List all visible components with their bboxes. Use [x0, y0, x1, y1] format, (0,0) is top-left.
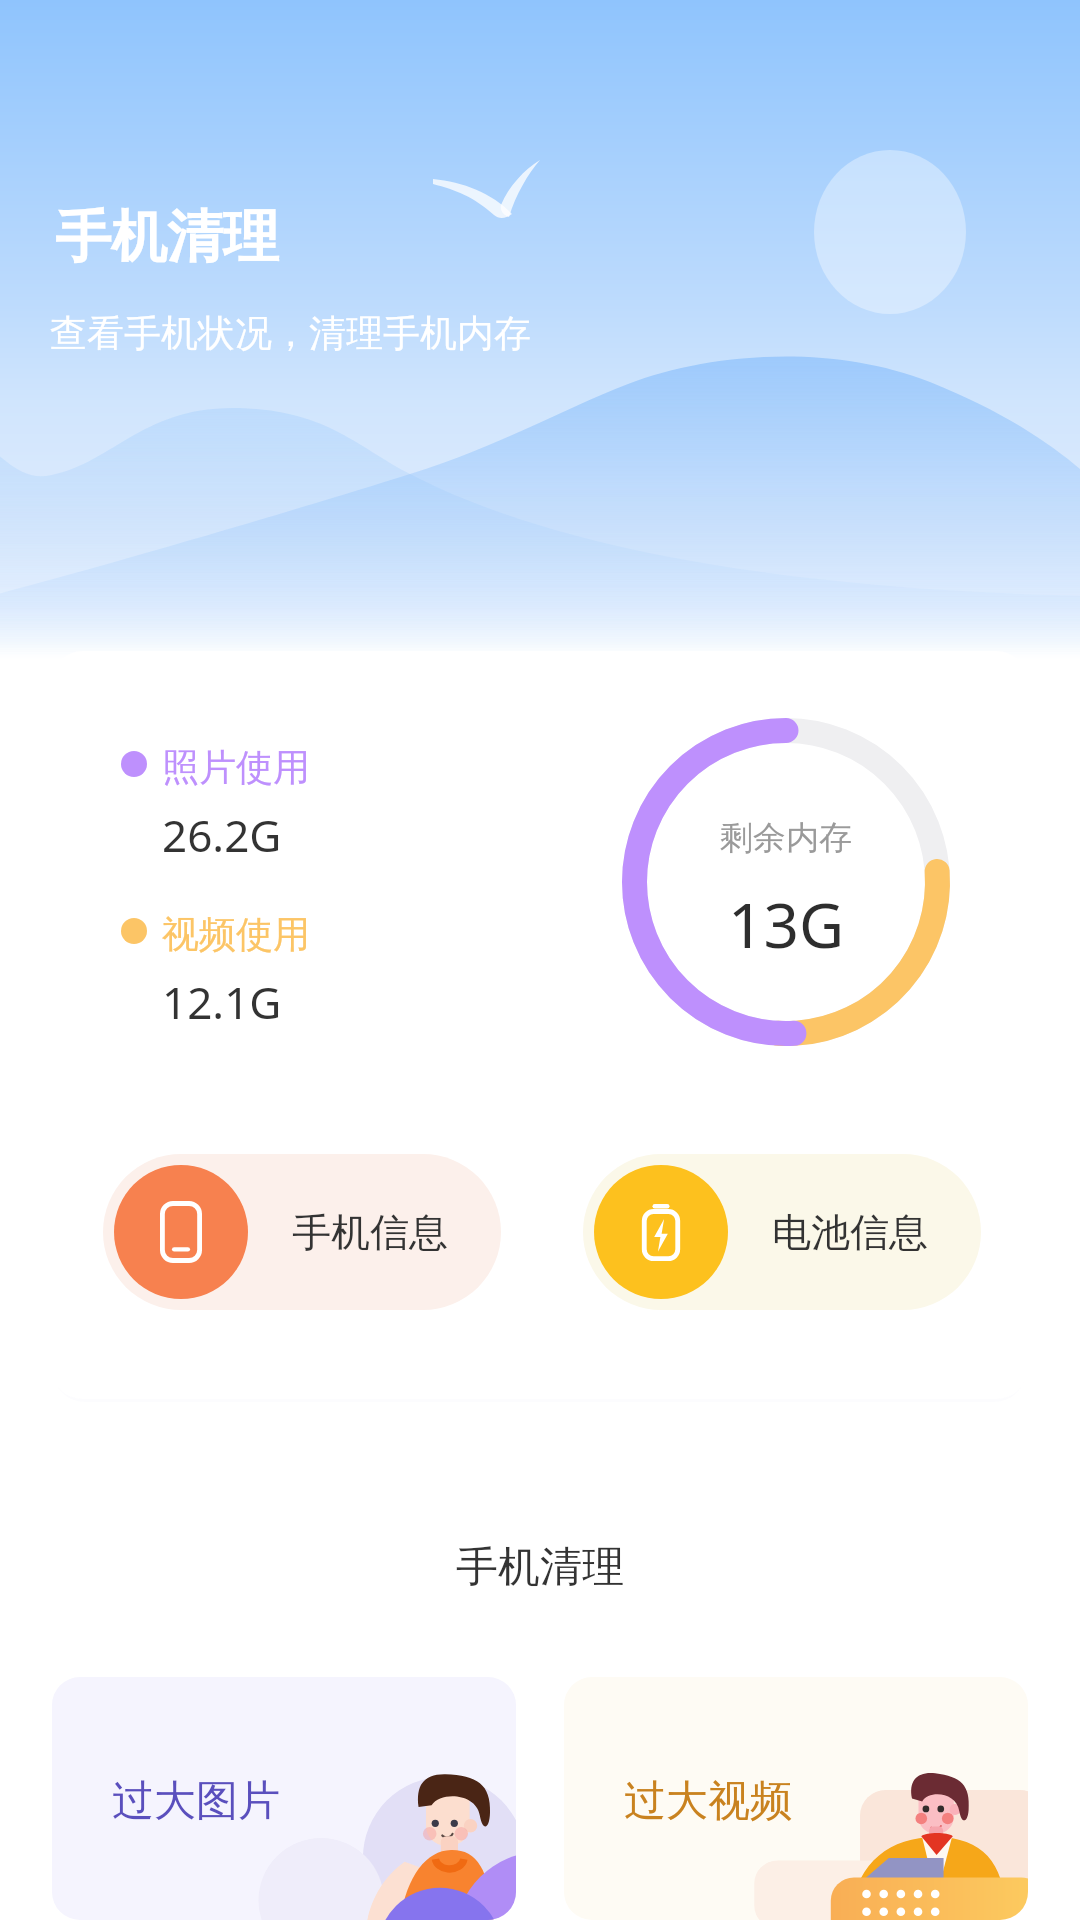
staticText: 手机清理	[55, 202, 279, 273]
button[interactable]: 电池信息	[583, 1154, 981, 1310]
button[interactable]: 过大图片	[52, 1677, 516, 1920]
staticText: 手机清理	[0, 1541, 1080, 1594]
staticText: 电池信息	[772, 1208, 928, 1257]
staticText: 过大图片	[112, 1775, 280, 1828]
staticText: 剩余内存	[720, 817, 852, 859]
staticText: 13G	[728, 882, 845, 966]
staticText: 12.1G	[162, 972, 282, 1032]
staticText: 照片使用	[162, 744, 310, 791]
staticText: 手机信息	[292, 1208, 448, 1257]
staticText: 查看手机状况，清理手机内存	[50, 310, 531, 357]
staticText: 过大视频	[624, 1775, 792, 1828]
staticText: 26.2G	[162, 805, 282, 865]
button[interactable]: 手机信息	[103, 1154, 501, 1310]
staticText: 视频使用	[162, 911, 310, 958]
button[interactable]: 过大视频	[564, 1677, 1028, 1920]
